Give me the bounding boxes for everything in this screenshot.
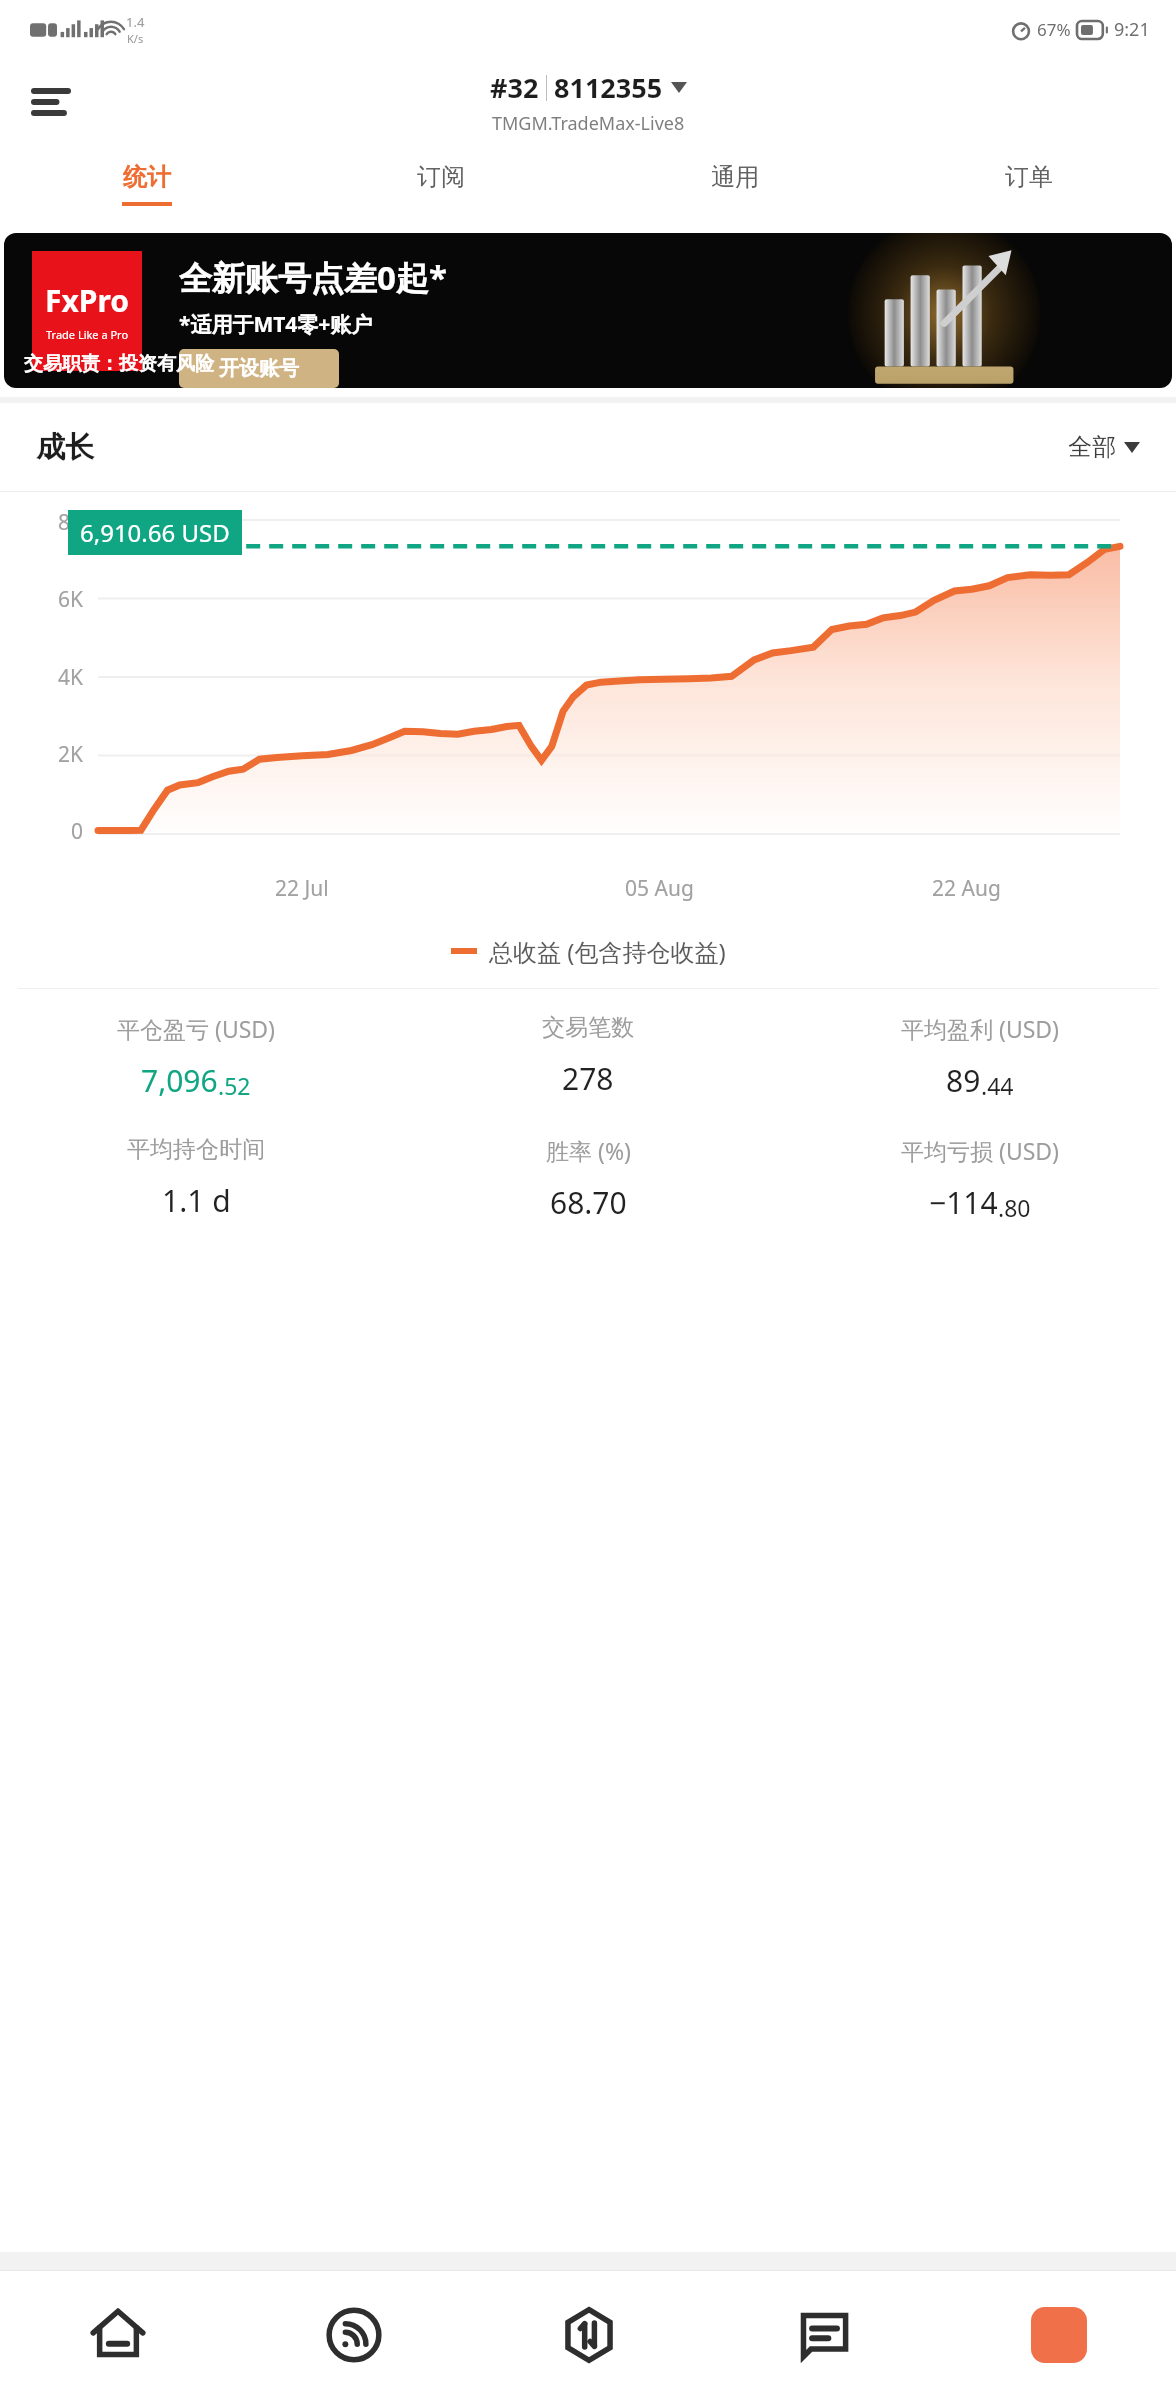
staticText: 8K bbox=[58, 508, 84, 537]
staticText: .44 bbox=[981, 1070, 1014, 1101]
staticText: 05 Aug bbox=[625, 874, 694, 903]
button[interactable]: Menu bbox=[22, 73, 80, 131]
staticText: 成长 bbox=[36, 429, 94, 466]
staticText: 平均亏损 (USD) bbox=[901, 1135, 1060, 1166]
staticText: 2K bbox=[58, 740, 84, 769]
staticText: FxPro bbox=[45, 280, 129, 321]
staticText: 全部 bbox=[1068, 432, 1116, 462]
button[interactable]: Signals bbox=[236, 2270, 471, 2400]
button[interactable]: 通用 bbox=[588, 146, 882, 222]
staticText: K/s bbox=[127, 31, 144, 46]
staticText: TMGM.TradeMax-Live8 bbox=[492, 111, 685, 136]
staticText: 订单 bbox=[1005, 162, 1053, 192]
staticText: 22 Jul bbox=[275, 874, 329, 903]
staticText: 平均持仓时间 bbox=[127, 1135, 265, 1164]
button[interactable]: 胜率 (%) bbox=[392, 1135, 784, 1223]
staticText: .52 bbox=[218, 1070, 251, 1101]
staticText: 7,096 bbox=[141, 1060, 218, 1101]
staticText: 全新账号点差0起* bbox=[179, 255, 447, 300]
staticText: 8112355 bbox=[554, 69, 663, 106]
staticText: *适用于MT4零+账户 bbox=[179, 310, 373, 339]
staticText: 67% bbox=[1037, 18, 1071, 41]
button[interactable]: FxPro bbox=[4, 233, 1172, 388]
staticText: 平仓盈亏 (USD) bbox=[117, 1013, 276, 1044]
staticText: 交易笔数 bbox=[542, 1013, 634, 1042]
staticText: 1.4 bbox=[126, 13, 145, 31]
button[interactable]: 统计 bbox=[0, 146, 294, 222]
staticText: 6K bbox=[58, 585, 84, 614]
staticText: 68.70 bbox=[550, 1182, 627, 1223]
staticText: .80 bbox=[998, 1192, 1031, 1223]
staticText: −114 bbox=[929, 1182, 998, 1223]
staticText: #32 bbox=[490, 69, 539, 106]
staticText: 订阅 bbox=[417, 162, 465, 192]
staticText: 22 Aug bbox=[932, 874, 1001, 903]
staticText: 4K bbox=[58, 663, 84, 692]
button[interactable]: 全部 bbox=[1068, 432, 1140, 462]
staticText: 278 bbox=[562, 1058, 614, 1099]
staticText: 交易职责：投资有风险 bbox=[24, 352, 214, 376]
staticText: 统计 bbox=[123, 162, 171, 192]
staticText: 89 bbox=[946, 1060, 981, 1101]
button[interactable] bbox=[941, 2270, 1176, 2400]
button[interactable]: 交易笔数 bbox=[392, 1013, 784, 1099]
button[interactable]: Home bbox=[0, 2270, 236, 2400]
staticText: 0 bbox=[71, 817, 84, 846]
staticText: 胜率 (%) bbox=[546, 1135, 631, 1166]
staticText: 9:21 bbox=[1114, 17, 1150, 42]
button[interactable]: 开设账号 bbox=[179, 349, 339, 388]
staticText: Trade Like a Pro bbox=[46, 327, 129, 342]
button[interactable]: 平均盈利 (USD) bbox=[784, 1013, 1176, 1101]
staticText: 6,910.66 USD bbox=[80, 516, 230, 549]
staticText: 平均盈利 (USD) bbox=[901, 1013, 1060, 1044]
button[interactable]: 平仓盈亏 (USD) bbox=[0, 1013, 392, 1101]
staticText: 1.1 d bbox=[162, 1180, 231, 1221]
button[interactable]: Messages bbox=[706, 2270, 941, 2400]
button[interactable]: Trade bbox=[471, 2270, 706, 2400]
button[interactable]: 订阅 bbox=[294, 146, 588, 222]
button[interactable]: 平均持仓时间 bbox=[0, 1135, 392, 1221]
staticText: 总收益 (包含持仓收益) bbox=[489, 935, 726, 968]
button[interactable]: 订单 bbox=[882, 146, 1176, 222]
button[interactable]: 平均亏损 (USD) bbox=[784, 1135, 1176, 1223]
staticText: 开设账号 bbox=[219, 356, 299, 381]
button[interactable]: #32 bbox=[490, 69, 687, 136]
staticText: 通用 bbox=[711, 162, 759, 192]
